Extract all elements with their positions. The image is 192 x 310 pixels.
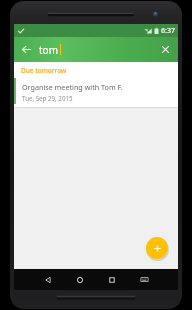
staticText: Due tomorrow	[21, 66, 67, 75]
button[interactable]: Recent apps	[96, 269, 128, 290]
button[interactable]: Back	[32, 269, 64, 290]
staticText: Tue, Sep 29, 2015	[22, 94, 73, 102]
button[interactable]: Back	[14, 37, 39, 62]
button[interactable]: tom	[39, 37, 153, 62]
button[interactable]: Add task	[146, 237, 168, 259]
button[interactable]: Organise meeting with Tom F.	[14, 78, 178, 107]
staticText: Organise meeting with Tom F.	[22, 82, 123, 92]
staticText: tom	[39, 43, 59, 57]
button[interactable]: Clear search	[153, 37, 178, 62]
staticText: 6:37	[161, 26, 175, 36]
button[interactable]: Home	[64, 269, 96, 290]
button[interactable]: Change keyboard	[128, 269, 160, 290]
